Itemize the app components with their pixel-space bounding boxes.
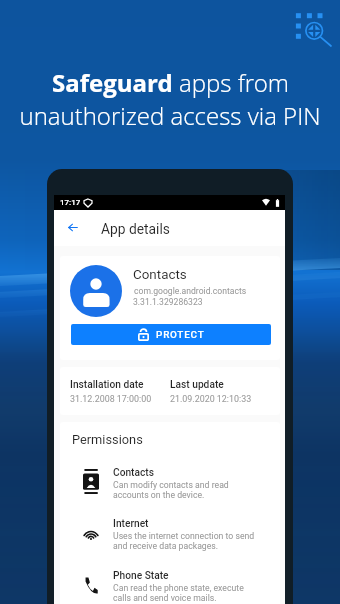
staticText: Permissions (72, 432, 143, 447)
staticText: Contacts (133, 267, 187, 283)
staticText: Last update (170, 379, 224, 391)
staticText: Phone State (113, 570, 169, 582)
staticText: Installation date (70, 379, 144, 391)
button[interactable]: PROTECT (71, 324, 271, 345)
staticText: unauthorized access via PIN (19, 99, 321, 132)
button[interactable]: Contacts (70, 459, 271, 505)
staticText: 17:17 (60, 198, 81, 207)
staticText: Can read the phone state, execute calls … (113, 583, 244, 604)
staticText: Contacts (113, 467, 155, 479)
button[interactable]: Internet (70, 510, 271, 556)
staticText: 31.12.2008 17:00:00 (70, 394, 152, 404)
staticText: Uses the internet connection to send and… (113, 531, 255, 552)
staticText: Internet (113, 518, 149, 530)
button[interactable]: Back (67, 222, 79, 233)
other: Scan apps (294, 11, 334, 51)
staticText: App details (101, 221, 170, 237)
staticText: Can modify contacts and read accounts on… (113, 480, 229, 501)
staticText: PROTECT (156, 329, 205, 341)
button[interactable]: Back (54, 210, 285, 246)
staticText: com.google.android.contacts (134, 286, 247, 296)
staticText: 3.31.1.329286323 (133, 297, 203, 307)
staticText: Safeguard apps from (52, 66, 289, 99)
staticText: 21.09.2020 12:10:33 (170, 394, 252, 404)
button[interactable]: Phone State (70, 562, 271, 604)
